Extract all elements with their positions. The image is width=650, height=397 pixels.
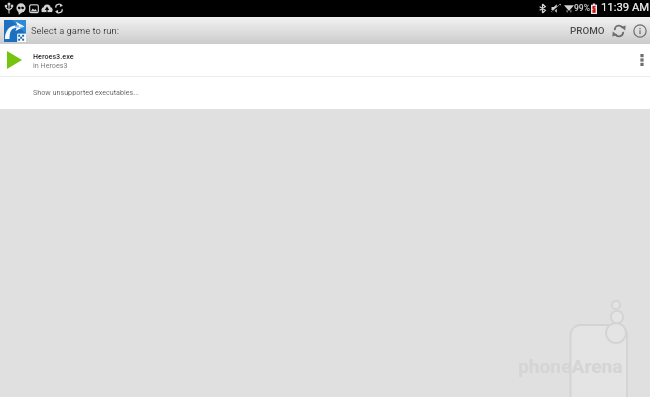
button[interactable]: App icon bbox=[4, 20, 26, 42]
button[interactable]: PROMO bbox=[564, 21, 605, 40]
staticText: 11:39 AM bbox=[601, 1, 650, 14]
staticText: in Heroes3 bbox=[33, 61, 68, 69]
button[interactable]: Heroes3.exe bbox=[0, 44, 650, 76]
staticText: 99% bbox=[574, 3, 590, 13]
button[interactable]: More options bbox=[633, 44, 650, 76]
staticText: phoneArena bbox=[518, 355, 623, 378]
staticText: Show unsupported executables... bbox=[33, 88, 139, 96]
button[interactable]: Info bbox=[629, 20, 650, 41]
button[interactable]: Show unsupported executables... bbox=[0, 77, 650, 109]
button[interactable]: Sync bbox=[608, 20, 629, 41]
staticText: Heroes3.exe bbox=[33, 52, 74, 60]
staticText: PROMO bbox=[570, 25, 605, 36]
staticText: Select a game to run: bbox=[31, 25, 119, 36]
